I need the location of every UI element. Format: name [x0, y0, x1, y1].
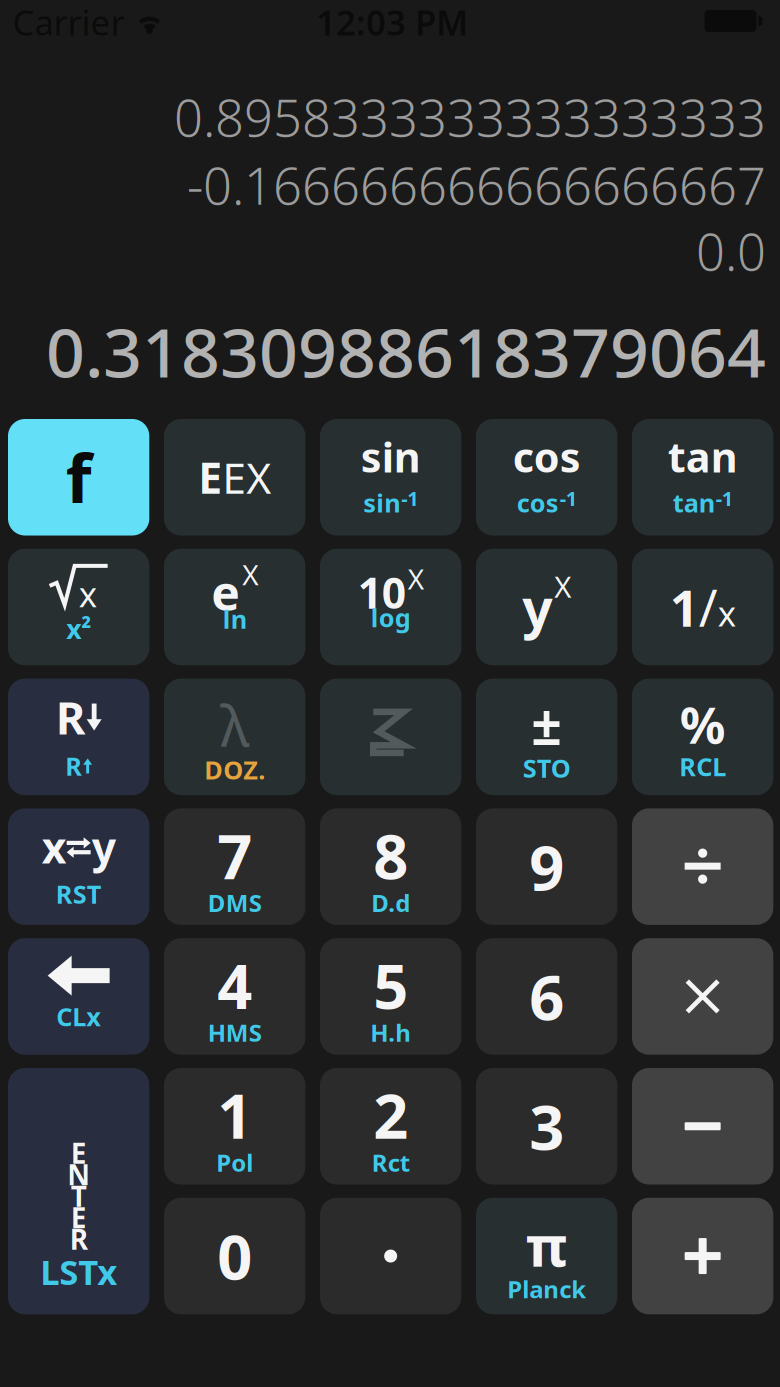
staticText: y	[92, 818, 116, 875]
button[interactable]: exchange x and y	[8, 808, 149, 925]
staticText: H.h	[370, 1017, 411, 1048]
staticText: E	[71, 1134, 87, 1172]
staticText: tan	[673, 486, 715, 519]
staticText: Pol	[216, 1146, 253, 1178]
button[interactable]: change sign	[476, 679, 617, 795]
staticText: 0.31830988618379064	[46, 306, 766, 396]
staticText: π	[526, 1207, 568, 1282]
button[interactable]: tan	[632, 419, 773, 535]
staticText: f	[66, 433, 92, 521]
staticText: x	[42, 818, 67, 875]
staticText: X	[242, 556, 258, 593]
staticText: RST	[56, 877, 102, 911]
staticText: /	[699, 573, 718, 641]
staticText: CLx	[56, 1000, 101, 1033]
button[interactable]: 8	[320, 808, 461, 925]
button[interactable]: summation	[320, 679, 461, 795]
staticText: R	[56, 687, 86, 747]
staticText: 3	[529, 1085, 564, 1167]
button[interactable]: 6	[476, 938, 617, 1055]
button[interactable]: roll down	[8, 679, 149, 795]
staticText: 0.8958333333333333333	[174, 83, 766, 151]
staticText: -1	[716, 485, 733, 511]
button[interactable]: E E X	[164, 419, 305, 535]
button[interactable]: backspace	[8, 938, 149, 1055]
staticText: -1	[401, 485, 418, 511]
staticText: 12:03 PM	[316, 0, 468, 45]
button[interactable]: lambda	[164, 679, 305, 795]
button[interactable]: reciprocal	[632, 549, 773, 665]
button[interactable]: divide	[632, 808, 773, 925]
button[interactable]: decimal point	[320, 1198, 461, 1314]
staticText: x	[79, 571, 97, 617]
staticText: R	[70, 1220, 88, 1258]
button[interactable]: 9	[476, 808, 617, 925]
staticText: DMS	[208, 887, 262, 919]
staticText: -0.166666666666666667	[187, 151, 766, 219]
staticText: e	[211, 560, 240, 624]
button[interactable]: percent	[632, 679, 773, 795]
staticText: %	[680, 691, 726, 758]
staticText: E	[198, 449, 222, 506]
button[interactable]: y to the x	[476, 549, 617, 665]
staticText: log	[371, 601, 411, 634]
staticText: X	[408, 560, 424, 597]
button[interactable]: enter	[8, 1068, 149, 1314]
button[interactable]: 4	[164, 938, 305, 1055]
button[interactable]: plus	[632, 1198, 773, 1314]
button[interactable]: e to the x	[164, 549, 305, 665]
staticText: 5	[373, 944, 408, 1026]
staticText: ±	[531, 689, 562, 760]
button[interactable]: sin	[320, 419, 461, 535]
staticText: DOZ.	[204, 753, 265, 786]
staticText: 2	[373, 1074, 408, 1156]
staticText: 0.0	[696, 217, 766, 285]
button[interactable]: 2	[320, 1068, 461, 1184]
staticText: x	[718, 590, 736, 636]
staticText: HMS	[208, 1017, 262, 1048]
staticText: λ	[220, 687, 249, 762]
button[interactable]: f shift	[8, 419, 149, 535]
staticText: ln	[223, 602, 247, 636]
staticText: cos	[517, 486, 559, 519]
staticText: 6	[529, 956, 564, 1037]
button[interactable]: pi	[476, 1198, 617, 1314]
staticText: Planck	[507, 1273, 586, 1305]
staticText: EX	[222, 449, 271, 506]
staticText: -1	[560, 485, 577, 511]
staticText: D.d	[371, 887, 410, 919]
staticText: 1	[217, 1074, 252, 1156]
staticText: 4	[217, 944, 252, 1026]
button[interactable]: 0	[164, 1198, 305, 1314]
staticText: X	[554, 567, 571, 606]
staticText: T	[71, 1177, 87, 1215]
staticText: E	[71, 1199, 87, 1236]
staticText: x²	[66, 611, 91, 646]
button[interactable]: square root	[8, 549, 149, 665]
staticText: cos	[513, 429, 581, 484]
staticText: 10	[358, 564, 406, 620]
staticText: 7	[217, 815, 252, 896]
button[interactable]: minus	[632, 1068, 773, 1184]
staticText: 8	[373, 815, 408, 896]
staticText: LSTx	[40, 1248, 117, 1294]
staticText: sin	[361, 429, 421, 484]
button[interactable]: 1	[164, 1068, 305, 1184]
staticText: tan	[668, 429, 738, 484]
staticText: STO	[523, 751, 571, 785]
staticText: RCL	[679, 749, 726, 783]
button[interactable]: ten to the x	[320, 549, 461, 665]
button[interactable]: multiply	[632, 938, 773, 1055]
button[interactable]: 7	[164, 808, 305, 925]
staticText: 9	[529, 826, 564, 907]
staticText: 1	[670, 573, 699, 641]
staticText: Carrier	[12, 0, 124, 45]
staticText: Rct	[372, 1146, 410, 1178]
button[interactable]: 3	[476, 1068, 617, 1184]
button[interactable]: cos	[476, 419, 617, 535]
button[interactable]: 5	[320, 938, 461, 1055]
staticText: 0	[217, 1215, 252, 1297]
staticText: R	[65, 749, 82, 783]
staticText: y	[522, 572, 552, 642]
staticText: N	[67, 1156, 90, 1193]
